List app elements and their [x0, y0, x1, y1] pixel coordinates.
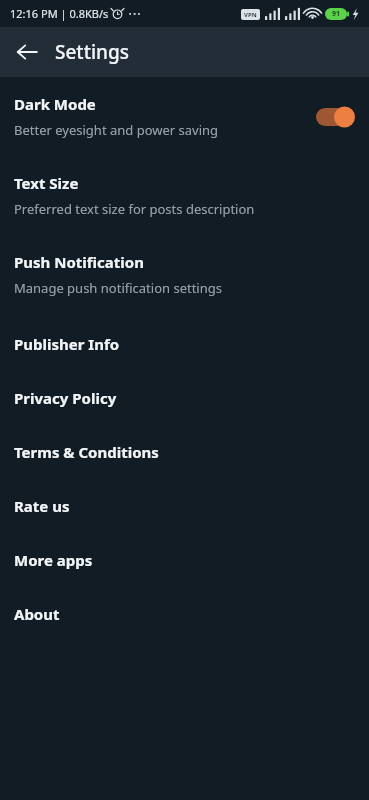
staticText: Publisher Info: [14, 334, 120, 354]
button[interactable]: About: [0, 589, 369, 638]
staticText: 12:16 PM | 0.8KB/s: [10, 6, 109, 21]
button[interactable]: More apps: [0, 535, 369, 584]
button[interactable]: Rate us: [0, 481, 369, 530]
staticText: Dark Mode: [14, 94, 96, 114]
staticText: Terms & Conditions: [14, 442, 159, 462]
staticText: VPN: [244, 11, 257, 19]
button[interactable]: Privacy Policy: [0, 373, 369, 422]
staticText: Push Notification: [14, 252, 144, 272]
staticText: Privacy Policy: [14, 388, 117, 408]
staticText: 91: [332, 9, 341, 19]
button[interactable]: Push Notification: [0, 246, 369, 303]
button[interactable]: Publisher Info: [0, 319, 369, 368]
staticText: ⋯: [128, 6, 141, 21]
staticText: Settings: [55, 39, 129, 65]
staticText: Manage push notification settings: [14, 279, 222, 297]
staticText: Preferred text size for posts descriptio…: [14, 200, 255, 218]
staticText: About: [14, 604, 60, 624]
staticText: Rate us: [14, 496, 70, 516]
staticText: More apps: [14, 550, 93, 570]
staticText: Better eyesight and power saving: [14, 121, 219, 139]
button[interactable]: Text Size: [0, 167, 369, 224]
button[interactable]: Dark Mode toggle: [315, 105, 355, 129]
button[interactable]: Terms & Conditions: [0, 427, 369, 476]
button[interactable]: Dark Mode: [0, 88, 369, 145]
staticText: Text Size: [14, 173, 79, 193]
button[interactable]: Back: [6, 31, 48, 73]
